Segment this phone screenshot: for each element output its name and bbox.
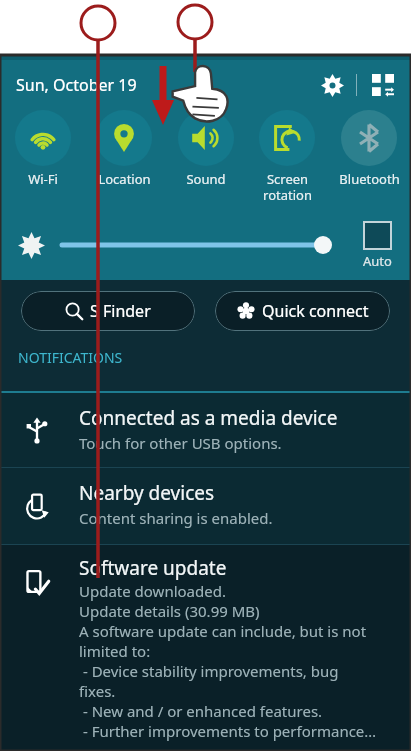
button[interactable]: Auto (349, 221, 405, 270)
button[interactable]: Settings (314, 67, 350, 103)
staticText: Wi-Fi (28, 170, 58, 188)
button[interactable]: Sound (167, 110, 245, 188)
staticText: Location (98, 170, 151, 188)
staticText: S Finder (90, 300, 151, 322)
button[interactable]: Connected as a media device (0, 393, 411, 467)
staticText: NOTIFICATIONS (18, 348, 123, 367)
staticText: Sun, October 19 (16, 74, 137, 96)
button[interactable]: Screen rotation (248, 110, 326, 203)
button[interactable]: Nearby devices (0, 468, 411, 544)
staticText: Content sharing is enabled. (79, 508, 273, 528)
button[interactable]: S Finder (21, 291, 195, 331)
staticText: Screen rotation (263, 170, 312, 203)
staticText: Auto (363, 252, 392, 270)
staticText: Update downloaded. Update details (30.99… (79, 581, 377, 741)
staticText: Bluetooth (339, 170, 400, 188)
button[interactable]: Quick connect (215, 291, 390, 331)
button[interactable]: Location (85, 110, 163, 188)
button[interactable]: Edit quick settings (365, 67, 401, 103)
staticText: Connected as a media device (79, 405, 338, 431)
button[interactable]: Wi-Fi (4, 110, 82, 188)
staticText: Sound (186, 170, 226, 188)
button[interactable]: Bluetooth (330, 110, 408, 188)
button[interactable]: Software update (0, 545, 411, 751)
staticText: Software update (79, 555, 227, 581)
staticText: Quick connect (262, 300, 369, 322)
staticText: Nearby devices (79, 480, 215, 506)
button[interactable]: Brightness slider (62, 228, 333, 262)
staticText: Touch for other USB options. (79, 433, 282, 453)
button[interactable]: Brightness (10, 224, 52, 266)
